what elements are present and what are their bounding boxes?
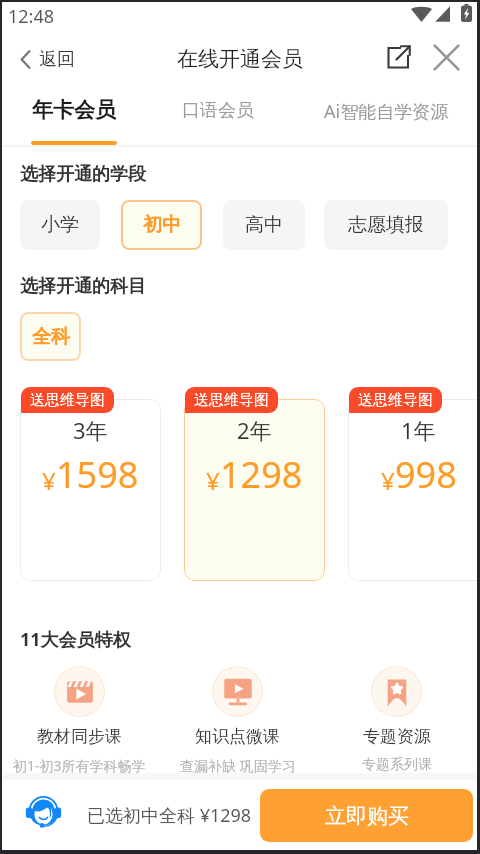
- staticText: 返回: [39, 48, 75, 71]
- staticText: 1298: [220, 450, 303, 499]
- button[interactable]: 志愿填报: [324, 200, 448, 250]
- staticText: 专题资源: [363, 726, 431, 747]
- staticText: 送思维导图: [358, 391, 433, 410]
- staticText: 初1-初3所有学科畅学: [13, 756, 146, 775]
- staticText: 年卡会员: [32, 97, 116, 123]
- staticText: 志愿填报: [348, 213, 424, 237]
- button[interactable]: 高中: [223, 200, 305, 250]
- button[interactable]: 立即购买: [260, 789, 473, 842]
- staticText: 在线开通会员: [177, 46, 303, 72]
- button[interactable]: Close: [422, 32, 472, 82]
- staticText: 初中: [143, 213, 181, 237]
- staticText: 已选初中全科 ¥1298: [87, 803, 252, 828]
- staticText: 送思维导图: [194, 391, 269, 410]
- button[interactable]: Share: [374, 33, 422, 81]
- button[interactable]: 全科: [20, 312, 81, 361]
- button[interactable]: 教材同步课: [0, 666, 158, 775]
- button[interactable]: 专题资源: [317, 666, 476, 774]
- staticText: 口语会员: [182, 99, 254, 122]
- staticText: 选择开通的科目: [20, 275, 146, 298]
- button[interactable]: 年卡会员: [0, 88, 148, 148]
- staticText: 送思维导图: [30, 391, 105, 410]
- staticText: 全科: [32, 325, 70, 349]
- staticText: 998: [395, 450, 457, 499]
- staticText: ¥: [381, 464, 395, 497]
- staticText: 立即购买: [325, 803, 409, 829]
- staticText: 教材同步课: [37, 726, 122, 747]
- button[interactable]: 口语会员: [144, 88, 292, 132]
- button[interactable]: Ai智能自学资源: [298, 88, 474, 132]
- staticText: 1598: [56, 450, 139, 499]
- staticText: 专题系列课: [362, 756, 432, 774]
- button[interactable]: 1年: [348, 399, 480, 581]
- button[interactable]: 知识点微课: [158, 666, 317, 775]
- staticText: ¥: [206, 464, 220, 497]
- button[interactable]: 返回: [0, 30, 87, 88]
- staticText: 1年: [401, 415, 436, 445]
- staticText: 3年: [73, 415, 108, 445]
- button[interactable]: 3年: [20, 399, 161, 581]
- staticText: Ai智能自学资源: [324, 99, 449, 124]
- staticText: 高中: [245, 213, 283, 237]
- button[interactable]: Customer service: [26, 795, 61, 830]
- staticText: 小学: [41, 213, 79, 237]
- button[interactable]: 初中: [121, 200, 202, 250]
- staticText: 选择开通的学段: [20, 163, 146, 186]
- staticText: 查漏补缺 巩固学习: [180, 756, 296, 775]
- button[interactable]: 2年: [184, 399, 325, 581]
- staticText: 知识点微课: [195, 726, 280, 747]
- button[interactable]: 小学: [20, 200, 100, 250]
- staticText: 11大会员特权: [20, 627, 131, 652]
- staticText: 12:48: [8, 4, 55, 29]
- staticText: ¥: [42, 464, 56, 497]
- staticText: 2年: [237, 415, 272, 445]
